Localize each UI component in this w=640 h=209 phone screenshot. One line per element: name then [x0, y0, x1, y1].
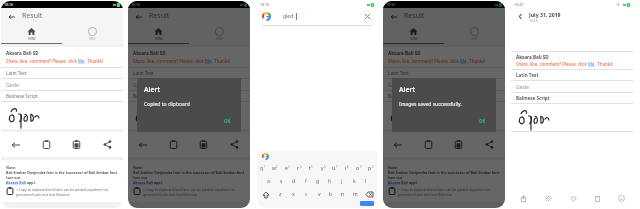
staticText: 19:43: [514, 2, 523, 7]
button[interactable]: g: [312, 175, 324, 188]
button[interactable]: More: [609, 188, 633, 208]
button[interactable]: Copy: [31, 132, 61, 157]
button[interactable]: Search: [360, 201, 374, 206]
button[interactable]: q: [257, 162, 269, 175]
button[interactable]: Me: [205, 58, 212, 64]
staticText: 7: [336, 165, 338, 169]
button[interactable]: Backspace: [361, 188, 377, 201]
button[interactable]: Aksara Bali: [388, 180, 408, 185]
button[interactable]: v: [313, 188, 325, 201]
staticText: u: [332, 165, 336, 172]
staticText: Latin Text: [516, 72, 539, 78]
staticText: Latin Text: [388, 70, 409, 76]
button[interactable]: e: [281, 162, 293, 175]
button[interactable]: INFO: [189, 24, 250, 43]
staticText: j: [341, 178, 343, 185]
button[interactable]: Copy: [158, 132, 188, 157]
staticText: Bali Simbar Dwijendra font is the succes…: [388, 170, 500, 180]
button[interactable]: Save: [61, 132, 92, 157]
staticText: INFO: [89, 37, 96, 41]
button[interactable]: b: [325, 188, 337, 201]
staticText: = Copy to clipboard (and later can be pa…: [143, 187, 245, 197]
staticText: f: [305, 178, 307, 185]
button[interactable]: HOME: [128, 24, 189, 43]
staticText: HOME: [410, 37, 418, 41]
staticText: . Thanks!: [467, 58, 486, 64]
button[interactable]: Delete: [585, 188, 609, 208]
button[interactable]: j: [336, 175, 348, 188]
button[interactable]: Share: [219, 132, 250, 157]
staticText: g: [316, 178, 320, 185]
staticText: q: [260, 165, 264, 172]
button[interactable]: Me: [78, 58, 85, 64]
button[interactable]: Clear: [363, 12, 372, 21]
button[interactable]: r: [293, 162, 305, 175]
button[interactable]: Save: [443, 132, 474, 157]
staticText: m: [353, 191, 358, 198]
button[interactable]: Copy: [413, 132, 443, 157]
staticText: INFO: [471, 37, 478, 41]
button[interactable]: Me: [460, 58, 467, 64]
button[interactable]: Aksara Bali: [6, 180, 26, 185]
button[interactable]: m: [349, 188, 361, 201]
button[interactable]: Back: [128, 132, 158, 157]
button[interactable]: z: [274, 188, 287, 201]
button[interactable]: Back: [515, 11, 526, 22]
button[interactable]: OK: [476, 117, 489, 125]
button[interactable]: u: [329, 162, 341, 175]
staticText: x: [292, 191, 295, 198]
button[interactable]: k: [348, 175, 360, 188]
button[interactable]: f: [300, 175, 312, 188]
button[interactable]: Share: [92, 132, 123, 157]
button[interactable]: c: [300, 188, 313, 201]
button[interactable]: Back: [133, 11, 144, 22]
button[interactable]: INFO: [62, 24, 123, 43]
button[interactable]: a: [262, 175, 275, 188]
button[interactable]: d: [288, 175, 300, 188]
button[interactable]: Share: [474, 132, 505, 157]
button[interactable]: l: [360, 175, 372, 188]
button[interactable]: s: [275, 175, 288, 188]
staticText: Bali Simbar Dwijendra font is the succes…: [6, 170, 118, 180]
button[interactable]: Share: [511, 188, 536, 208]
button[interactable]: Back: [383, 132, 413, 157]
button[interactable]: INFO: [444, 24, 505, 43]
button[interactable]: Save: [188, 132, 219, 157]
button[interactable]: o: [353, 162, 365, 175]
staticText: i: [345, 165, 347, 172]
button[interactable]: Shift: [257, 188, 274, 201]
button[interactable]: Back: [388, 11, 399, 22]
staticText: z: [279, 191, 282, 198]
button[interactable]: Favourite: [561, 188, 585, 208]
button[interactable]: Aksara Bali: [133, 180, 153, 185]
button[interactable]: Edit: [536, 188, 561, 208]
button[interactable]: n: [337, 188, 349, 201]
staticText: 19:16: [529, 18, 538, 23]
staticText: 1: [264, 165, 266, 169]
button[interactable]: Back: [1, 132, 31, 157]
button[interactable]: Back: [6, 11, 17, 22]
staticText: k: [353, 178, 356, 185]
button[interactable]: HOME: [383, 24, 444, 43]
button[interactable]: OK: [221, 117, 234, 125]
button[interactable]: t: [305, 162, 317, 175]
button[interactable]: w: [269, 162, 281, 175]
staticText: 9: [360, 165, 362, 169]
button[interactable]: h: [324, 175, 336, 188]
button[interactable]: HOME: [1, 24, 62, 43]
staticText: ·Ill·: [616, 3, 621, 7]
staticText: . Thanks!: [595, 61, 614, 67]
button[interactable]: p: [365, 162, 377, 175]
staticText: Aksara Bali SD: [6, 50, 39, 56]
staticText: HOME: [155, 37, 163, 41]
staticText: Me: [588, 61, 595, 67]
staticText: Result: [22, 11, 43, 21]
button[interactable]: i: [341, 162, 353, 175]
button[interactable]: y: [317, 162, 329, 175]
button[interactable]: x: [287, 188, 300, 201]
staticText: Share, like, comment? Please, click: [388, 58, 460, 64]
staticText: Balinese Script: [388, 93, 420, 99]
staticText: INFO: [216, 37, 223, 41]
staticText: Balinese Script: [516, 95, 550, 101]
staticText: 4: [300, 165, 302, 169]
